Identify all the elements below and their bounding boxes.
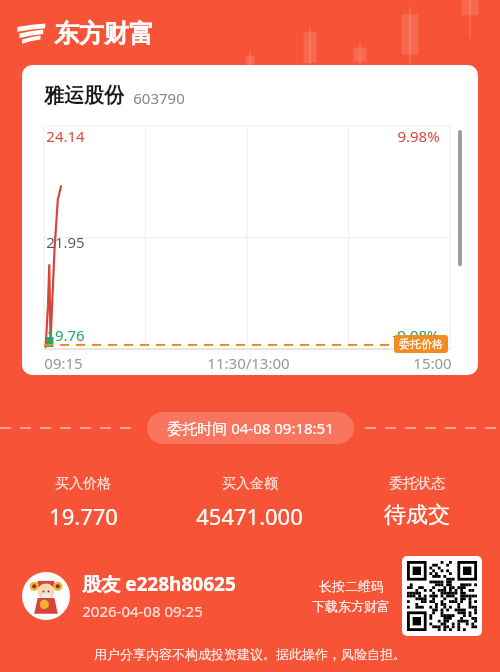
staticText: 21.95 xyxy=(46,232,85,252)
staticText: 东方财富 xyxy=(54,18,154,49)
button[interactable]: 委托时间 04-08 09:18:51 xyxy=(147,412,354,444)
staticText: 19.76 xyxy=(46,325,85,345)
staticText: 11:30/13:00 xyxy=(207,353,290,373)
button[interactable]: 雅运股份 xyxy=(22,65,478,375)
button[interactable]: User avatar xyxy=(22,572,70,620)
button[interactable]: 买入金额 xyxy=(166,475,333,531)
staticText: 买入金额 xyxy=(222,475,278,493)
staticText: 委托时间 04-08 09:18:51 xyxy=(167,418,334,438)
staticText: 24.14 xyxy=(46,126,85,146)
staticText: 09:15 xyxy=(44,353,83,373)
staticText: 下载东方财富 xyxy=(312,598,390,614)
staticText: 委托状态 xyxy=(389,475,445,493)
button[interactable]: QR code, download Eastmoney xyxy=(402,556,482,636)
staticText: 买入价格 xyxy=(55,475,111,493)
button[interactable]: 委托价格 xyxy=(394,335,448,353)
staticText: 2026-04-08 09:25 xyxy=(82,601,203,621)
staticText: 用户分享内容不构成投资建议。据此操作，风险自担。 xyxy=(94,646,406,662)
staticText: -9.98% xyxy=(392,325,440,345)
staticText: 股友 e228h80625 xyxy=(82,571,236,597)
staticText: 15:00 xyxy=(413,353,452,373)
staticText: 待成交 xyxy=(384,501,450,529)
staticText: 雅运股份 xyxy=(44,83,124,108)
staticText: 45471.000 xyxy=(196,501,303,531)
button[interactable]: 买入价格 xyxy=(0,475,166,531)
staticText: 委托价格 xyxy=(399,337,443,351)
staticText: 19.770 xyxy=(49,501,118,531)
button[interactable]: 委托状态 xyxy=(333,475,500,529)
staticText: 9.98% xyxy=(397,126,440,146)
staticText: 603790 xyxy=(133,88,185,108)
staticText: 长按二维码 xyxy=(319,578,384,594)
